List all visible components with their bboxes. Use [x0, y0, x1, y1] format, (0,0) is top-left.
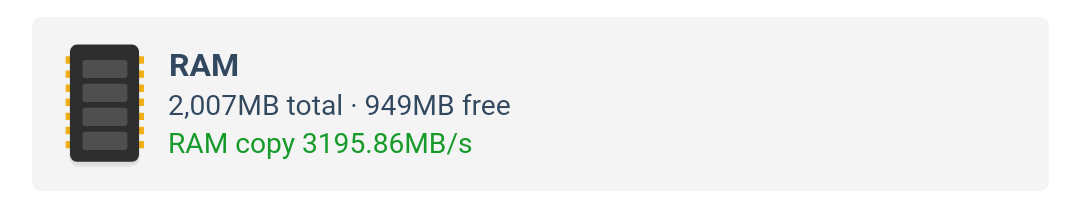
other: RAM module [65, 44, 145, 164]
staticText: RAM copy 3195.86MB/s [168, 127, 473, 160]
button[interactable]: RAM module [32, 17, 1049, 191]
staticText: 2,007MB total · 949MB free [168, 89, 511, 122]
staticText: RAM [169, 46, 240, 84]
